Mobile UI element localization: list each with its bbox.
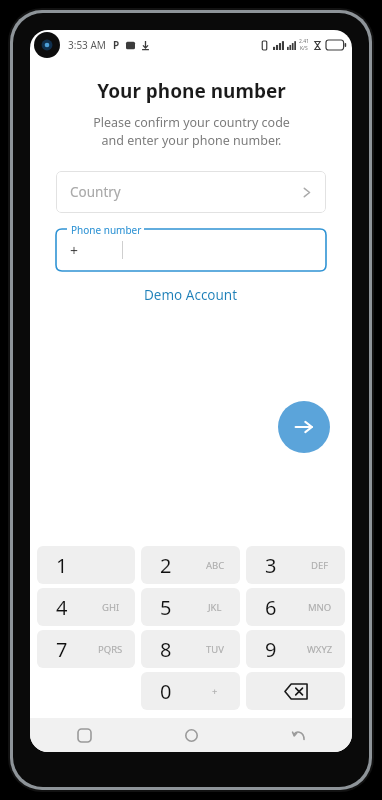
button[interactable]: 7 [37,630,135,668]
staticText: 6 [265,594,277,621]
staticText: WXYZ [307,643,333,656]
staticText: Phone number [71,223,142,237]
staticText: TUV [206,643,224,656]
staticText: 7 [56,636,68,663]
staticText: K/S [300,45,308,52]
staticText: 0 [160,678,172,705]
button[interactable]: 2 [141,546,240,584]
button[interactable]: 5 [141,588,240,626]
staticText: Please confirm your country code and ent… [93,114,290,149]
staticText: 3:53 AM [68,38,106,52]
staticText: DEF [311,559,329,572]
button[interactable]: 3 [246,546,345,584]
staticText: Your phone number [97,78,286,104]
button[interactable]: Home [138,718,245,752]
button[interactable]: 4 [37,588,135,626]
staticText: 4 [56,594,68,621]
staticText: 8 [160,636,172,663]
staticText: 1 [56,552,68,579]
button[interactable]: Country [56,171,326,213]
button[interactable]: 1 [37,546,135,584]
staticText: P [113,38,120,52]
staticText: MNO [308,601,332,614]
staticText: + [70,241,79,260]
staticText: 2 [160,552,172,579]
button[interactable]: 0 [141,672,240,710]
staticText: JKL [208,601,222,614]
staticText: Demo Account [144,286,238,304]
staticText: PQRS [98,643,123,656]
staticText: 3 [265,552,277,579]
staticText: Country [70,183,121,201]
button[interactable]: Back [245,718,352,752]
button[interactable]: 8 [141,630,240,668]
staticText: GHI [102,601,120,614]
button[interactable]: Recents [30,718,138,752]
button[interactable]: Continue [278,401,330,453]
button[interactable]: 6 [246,588,345,626]
staticText: + [212,685,218,698]
staticText: 2.41 [299,38,309,45]
staticText: 9 [265,636,277,663]
button[interactable]: Demo Account [136,283,246,307]
staticText: 5 [160,594,172,621]
button[interactable]: Backspace [246,672,345,710]
staticText: ABC [206,559,225,572]
button[interactable]: 9 [246,630,345,668]
